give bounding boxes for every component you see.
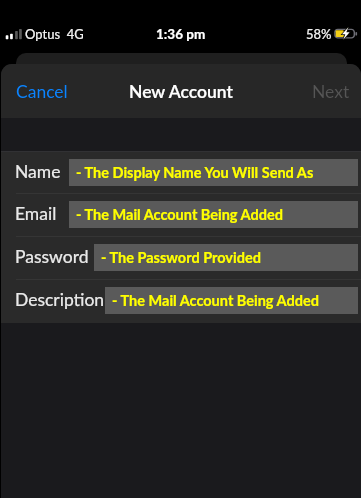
staticText: 1:36 pm (156, 26, 206, 42)
other: Cellular signal (5, 28, 23, 40)
staticText: - The Password Provided (101, 249, 261, 266)
staticText: - The Mail Account Being Added (112, 292, 319, 309)
button[interactable]: Password (1, 237, 361, 280)
staticText: 58% (306, 26, 332, 42)
staticText: - The Mail Account Being Added (76, 206, 283, 223)
staticText: Description (15, 289, 105, 310)
staticText: New Account (129, 81, 233, 102)
button[interactable]: Name (1, 152, 361, 194)
button[interactable]: Next (302, 73, 360, 110)
staticText: Optus 4G (25, 26, 84, 42)
staticText: Password (15, 246, 89, 267)
staticText: Cancel (16, 81, 68, 102)
staticText: Email (15, 203, 57, 224)
staticText: Name (15, 161, 61, 182)
staticText: Next (312, 81, 350, 102)
other: Battery charging 58 percent (333, 26, 359, 40)
button[interactable]: Email (1, 194, 361, 237)
button[interactable]: Cancel (6, 73, 78, 110)
staticText: - The Display Name You Will Send As (76, 164, 314, 181)
button[interactable]: Description (1, 280, 361, 323)
